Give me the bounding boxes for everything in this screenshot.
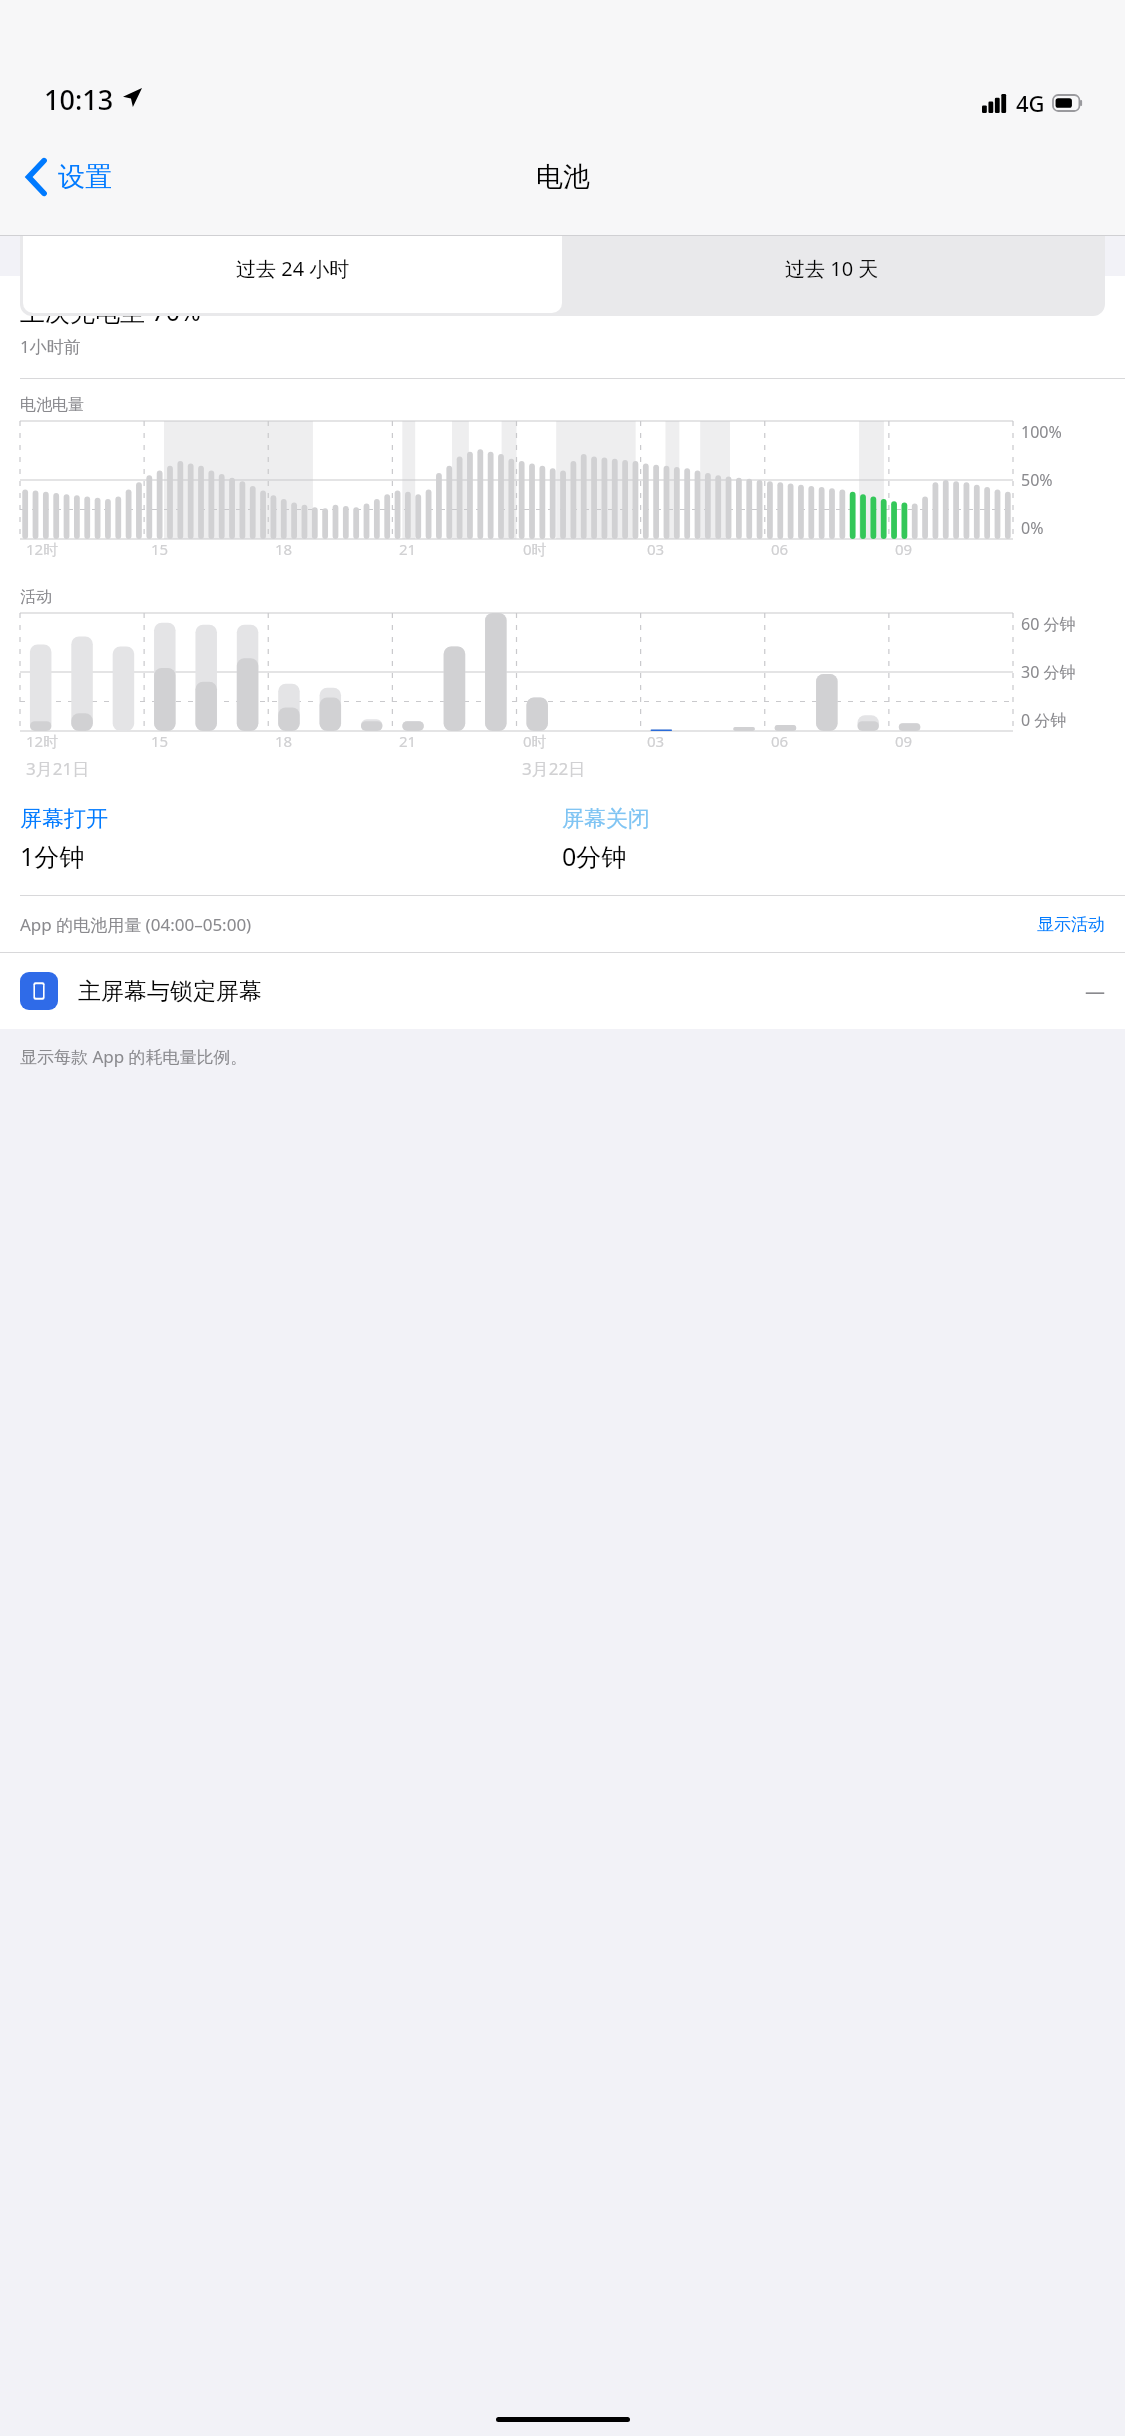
- staticText: 0时: [523, 731, 547, 751]
- staticText: 电池: [536, 160, 590, 194]
- staticText: 显示每款 App 的耗电量比例。: [20, 1045, 248, 1068]
- staticText: 上次充电至 70%: [20, 294, 201, 328]
- staticText: 12时: [26, 731, 59, 751]
- staticText: 0时: [523, 539, 547, 559]
- staticText: 0 分钟: [1021, 709, 1067, 731]
- staticText: 15: [151, 731, 169, 751]
- staticText: 50%: [1021, 469, 1053, 491]
- staticText: 1小时前: [20, 335, 81, 358]
- staticText: 电池电量: [20, 395, 84, 415]
- staticText: 21: [399, 539, 417, 559]
- staticText: 3月22日: [522, 757, 586, 780]
- button[interactable]: 过去 10 天: [562, 223, 1102, 313]
- button[interactable]: 主屏幕与锁定屏幕: [0, 953, 1125, 1029]
- staticText: 显示活动: [1037, 914, 1105, 935]
- button[interactable]: 设置: [26, 158, 112, 196]
- staticText: 屏幕关闭: [562, 805, 650, 833]
- staticText: 06: [771, 731, 789, 751]
- staticText: 0%: [1021, 517, 1044, 539]
- staticText: —: [1085, 978, 1105, 1005]
- staticText: 1分钟: [20, 839, 85, 873]
- staticText: 30 分钟: [1021, 661, 1076, 683]
- staticText: 03: [647, 731, 665, 751]
- staticText: 06: [771, 539, 789, 559]
- staticText: 15: [151, 539, 169, 559]
- staticText: 设置: [58, 160, 112, 194]
- staticText: 09: [895, 731, 913, 751]
- staticText: 21: [399, 731, 417, 751]
- staticText: App 的电池用量 (04:00–05:00): [20, 913, 1037, 936]
- staticText: 过去 24 小时: [236, 255, 350, 282]
- button[interactable]: 显示活动: [1037, 914, 1105, 935]
- staticText: 屏幕打开: [20, 805, 108, 833]
- staticText: 09: [895, 539, 913, 559]
- staticText: 过去 10 天: [785, 255, 879, 282]
- staticText: 60 分钟: [1021, 613, 1076, 635]
- staticText: 4G: [1016, 88, 1045, 118]
- staticText: 活动: [20, 587, 52, 607]
- staticText: 100%: [1021, 421, 1062, 443]
- button[interactable]: 过去 24 小时: [23, 223, 562, 313]
- staticText: 12时: [26, 539, 59, 559]
- staticText: 18: [275, 539, 293, 559]
- staticText: 18: [275, 731, 293, 751]
- staticText: 主屏幕与锁定屏幕: [78, 977, 1085, 1006]
- staticText: 3月21日: [26, 757, 90, 780]
- staticText: 10:13: [44, 81, 114, 118]
- staticText: 0分钟: [562, 839, 627, 873]
- staticText: 03: [647, 539, 665, 559]
